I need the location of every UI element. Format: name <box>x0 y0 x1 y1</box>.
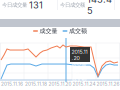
staticText: 2015.11.20 <box>71 48 87 61</box>
staticText: 143.45 <box>87 0 112 16</box>
staticText: 成交量 131 <box>71 62 88 75</box>
button[interactable]: 成交量 <box>33 27 57 35</box>
staticText: 今日成交量 <box>2 2 27 8</box>
staticText: 成交量 <box>39 27 57 35</box>
staticText: 131 <box>29 0 43 11</box>
staticText: 2015.11.26 <box>96 81 119 87</box>
staticText: 2015.11.18 <box>25 81 47 87</box>
staticText: 2015.11.16 <box>1 81 23 87</box>
staticText: 2015.11.20 <box>48 81 71 87</box>
staticText: 2015.11.24 <box>72 81 95 87</box>
button[interactable]: 今日成交量 <box>2 0 60 11</box>
staticText: 成交额 143 <box>71 76 88 89</box>
button[interactable]: 今日成交额 <box>60 0 118 16</box>
staticText: 今日成交额 <box>60 2 85 8</box>
button[interactable]: 成交额 <box>62 27 87 35</box>
staticText: 成交额 <box>69 27 87 35</box>
